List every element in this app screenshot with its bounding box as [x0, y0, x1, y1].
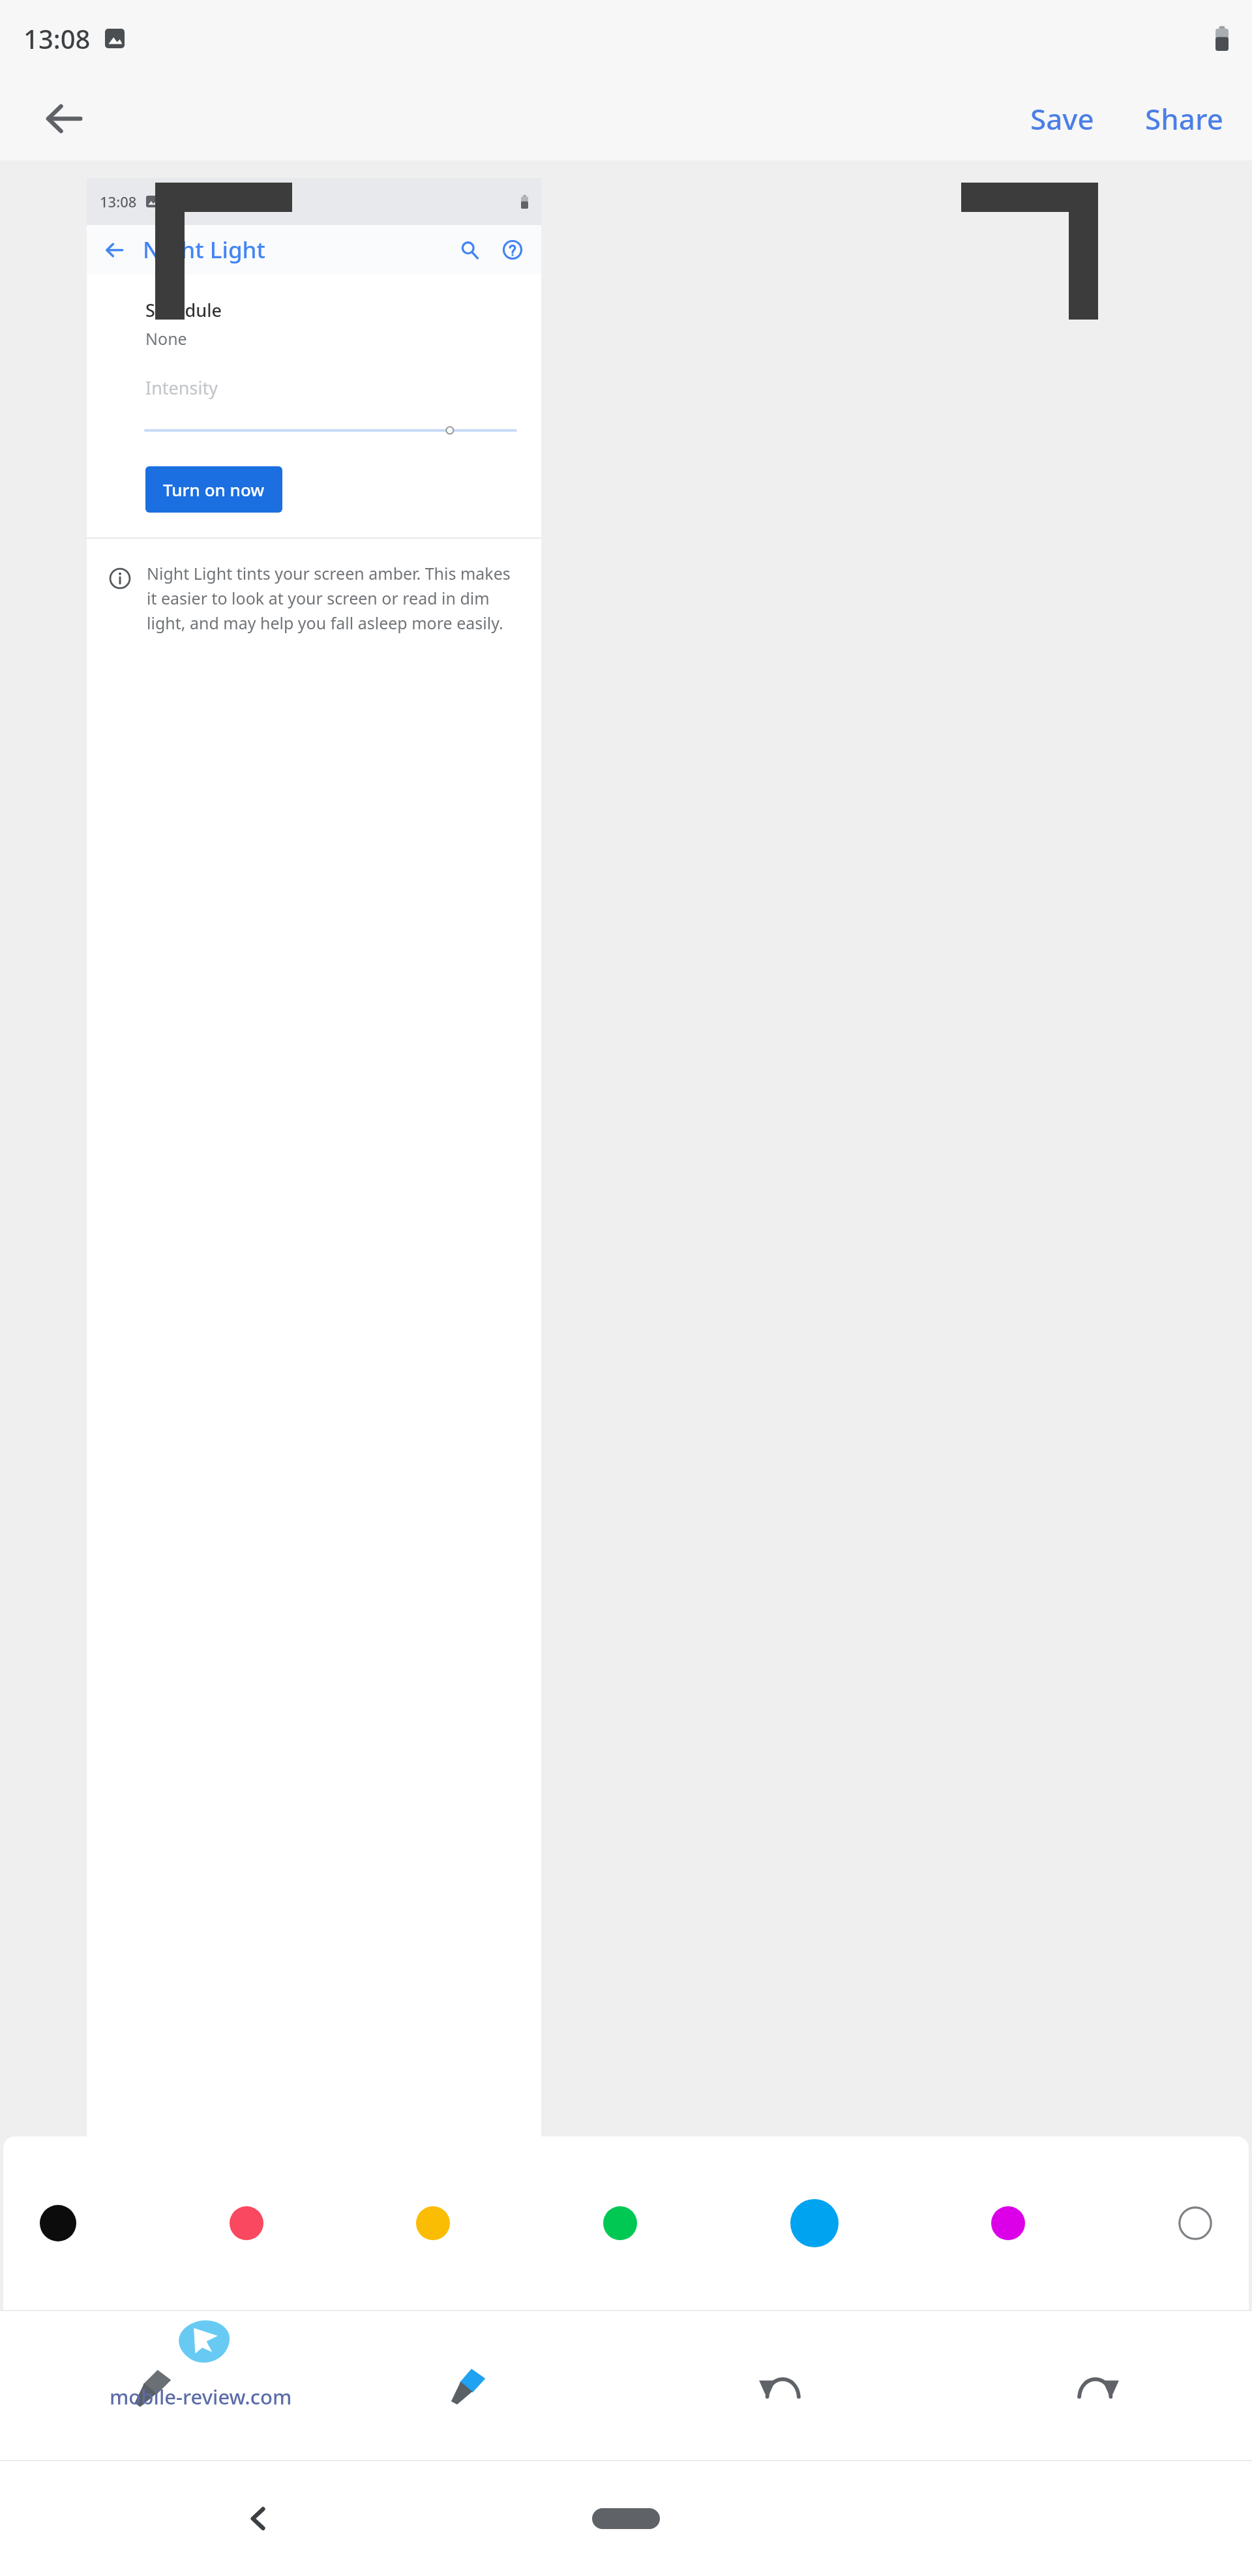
staticText: Schedule	[145, 298, 222, 322]
button[interactable]: Help	[497, 234, 528, 265]
staticText: Night Light	[143, 234, 265, 265]
button[interactable]: Black	[32, 2197, 84, 2249]
button[interactable]: Back	[27, 82, 100, 155]
staticText: 13:08	[100, 192, 137, 211]
button[interactable]: Green	[595, 2198, 645, 2248]
button[interactable]: Highlighter	[0, 2311, 313, 2460]
button[interactable]: Pen	[313, 2311, 626, 2460]
button[interactable]: Save	[1011, 81, 1114, 157]
button[interactable]: Share	[1125, 81, 1252, 157]
button[interactable]: Redo	[939, 2311, 1252, 2460]
button[interactable]	[87, 415, 541, 445]
button[interactable]: White	[1170, 2198, 1220, 2248]
staticText: 13:08	[23, 21, 91, 56]
staticText: Share	[1145, 99, 1223, 138]
button[interactable]: Blue	[782, 2191, 846, 2255]
staticText: None	[145, 327, 187, 350]
button[interactable]: Yellow	[408, 2198, 458, 2248]
button[interactable]: Undo	[626, 2311, 939, 2460]
button[interactable]: Navigate up	[100, 235, 128, 264]
staticText: mobile-review.com	[110, 2383, 292, 2410]
button[interactable]: Red	[222, 2198, 271, 2248]
button[interactable]: Turn on now	[145, 466, 282, 513]
button[interactable]: Back	[228, 2489, 288, 2549]
staticText: Night Light tints your screen amber. Thi…	[147, 562, 515, 634]
button[interactable]	[576, 2493, 676, 2545]
staticText: Intensity	[145, 376, 218, 400]
button[interactable]: Magenta	[983, 2198, 1033, 2248]
staticText: Save	[1030, 99, 1094, 138]
button[interactable]: Search	[454, 234, 485, 265]
staticText: Turn on now	[163, 478, 265, 501]
button[interactable]: Schedule	[87, 293, 541, 356]
